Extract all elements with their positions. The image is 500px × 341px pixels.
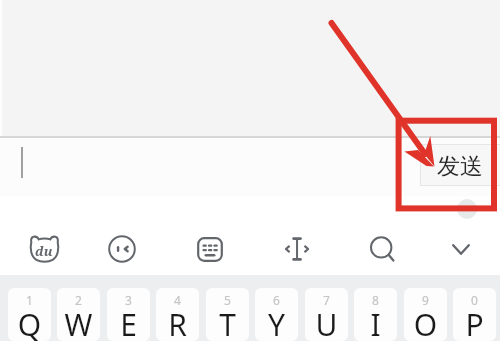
button[interactable]: 7 [305, 288, 348, 341]
staticText: 9 [404, 292, 447, 308]
button[interactable]: Baidu input [20, 225, 68, 273]
staticText: W [57, 304, 100, 341]
button[interactable]: Search [359, 225, 407, 273]
staticText: 2 [57, 292, 100, 308]
staticText: 3 [107, 292, 150, 308]
staticText: U [305, 304, 348, 341]
button[interactable]: Emoji [98, 225, 146, 273]
button[interactable]: 2 [57, 288, 100, 341]
button[interactable]: 5 [206, 288, 249, 341]
staticText: R [156, 304, 199, 341]
staticText: T [206, 304, 249, 341]
staticText: 7 [305, 292, 348, 308]
staticText: 发送 [437, 152, 483, 181]
staticText: E [107, 304, 150, 341]
staticText: 4 [156, 292, 199, 308]
button[interactable]: 6 [255, 288, 298, 341]
staticText: O [404, 304, 447, 341]
staticText: P [453, 304, 496, 341]
button[interactable]: 1 [8, 288, 51, 341]
button[interactable]: Voice input [457, 199, 477, 219]
staticText: Y [255, 304, 298, 341]
button[interactable]: Collapse keyboard [437, 225, 485, 273]
staticText: 6 [255, 292, 298, 308]
staticText: 0 [453, 292, 496, 308]
staticText: I [354, 304, 397, 341]
staticText: 8 [354, 292, 397, 308]
staticText: 1 [8, 292, 51, 308]
button[interactable]: 0 [453, 288, 496, 341]
button[interactable]: Keyboard [186, 225, 234, 273]
staticText: Q [8, 304, 51, 341]
staticText: du [35, 242, 53, 260]
button[interactable]: 8 [354, 288, 397, 341]
button[interactable]: Move cursor [272, 225, 320, 273]
button[interactable]: 9 [404, 288, 447, 341]
button[interactable]: 发送 [420, 144, 500, 186]
button[interactable]: 4 [156, 288, 199, 341]
button[interactable]: 3 [107, 288, 150, 341]
staticText: 5 [206, 292, 249, 308]
